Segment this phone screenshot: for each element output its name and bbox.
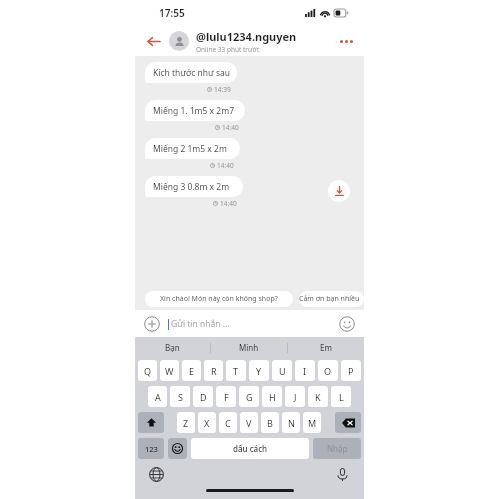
staticText: 14:39 xyxy=(214,85,231,94)
button[interactable]: N xyxy=(282,412,300,433)
button[interactable]: P xyxy=(341,360,361,381)
staticText: P xyxy=(348,365,354,377)
button[interactable]: A xyxy=(148,386,167,407)
button[interactable]: F xyxy=(216,386,236,407)
staticText: I xyxy=(303,365,307,377)
button[interactable]: W xyxy=(160,360,179,381)
staticText: Gửi tin nhắn ... xyxy=(171,318,230,330)
staticText: V xyxy=(246,417,252,429)
button[interactable]: Y xyxy=(249,360,269,381)
staticText: U xyxy=(279,365,286,377)
button[interactable]: More options xyxy=(336,31,356,51)
button[interactable]: R xyxy=(204,360,223,381)
staticText: G xyxy=(246,391,253,403)
staticText: Miếng 3 0.8m x 2m xyxy=(153,181,230,193)
staticText: Miếng 1. 1m5 x 2m7 xyxy=(153,105,234,117)
button[interactable]: Miếng 1. 1m5 x 2m7 xyxy=(145,100,245,121)
button[interactable]: T xyxy=(226,360,246,381)
button[interactable]: Bạn xyxy=(135,337,210,358)
button[interactable]: Z xyxy=(177,412,195,433)
button[interactable]: Back xyxy=(143,31,163,51)
button[interactable]: B xyxy=(261,412,279,433)
button[interactable]: V xyxy=(240,412,258,433)
button[interactable]: Gửi tin nhắn ... xyxy=(168,318,339,330)
button[interactable]: Nhập xyxy=(313,438,361,459)
button[interactable]: M xyxy=(303,412,321,433)
button[interactable]: C xyxy=(219,412,237,433)
button[interactable]: E xyxy=(182,360,201,381)
staticText: W xyxy=(165,365,174,377)
staticText: 14:40 xyxy=(217,161,234,170)
button[interactable]: Cảm ơn bạn nhiều n xyxy=(299,291,364,307)
button[interactable]: Kích thước như sau xyxy=(145,62,237,83)
button[interactable]: D xyxy=(193,386,213,407)
staticText: Xin chào! Món này còn không shop? xyxy=(160,294,278,304)
staticText: C xyxy=(225,417,231,429)
button[interactable]: L xyxy=(331,386,351,407)
staticText: D xyxy=(200,391,207,403)
staticText: E xyxy=(189,365,195,377)
staticText: H xyxy=(269,391,276,403)
button[interactable]: Miếng 3 0.8m x 2m xyxy=(145,176,243,197)
staticText: Z xyxy=(183,417,189,429)
staticText: Em xyxy=(320,342,332,353)
staticText: S xyxy=(178,391,183,403)
staticText: Minh xyxy=(239,342,259,353)
button[interactable]: Download xyxy=(328,180,350,202)
staticText: B xyxy=(267,417,273,429)
staticText: 123 xyxy=(145,444,158,454)
staticText: A xyxy=(155,391,161,403)
button[interactable]: Xin chào! Món này còn không shop? xyxy=(145,291,293,307)
button[interactable]: Numbers xyxy=(138,438,164,459)
staticText: Cảm ơn bạn nhiều n xyxy=(299,294,364,304)
button[interactable]: Minh xyxy=(211,337,287,358)
staticText: 17:55 xyxy=(159,6,185,20)
staticText: J xyxy=(294,391,297,403)
staticText: X xyxy=(204,417,210,429)
button[interactable]: O xyxy=(318,360,338,381)
staticText: dấu cách xyxy=(233,443,268,454)
staticText: M xyxy=(308,417,317,429)
button[interactable]: Miếng 2 1m5 x 2m xyxy=(145,138,240,159)
button[interactable]: S xyxy=(170,386,190,407)
button[interactable]: U xyxy=(272,360,292,381)
staticText: 14:40 xyxy=(220,199,237,208)
button[interactable]: K xyxy=(308,386,328,407)
staticText: F xyxy=(224,391,229,403)
button[interactable]: Emoji xyxy=(339,316,355,332)
button[interactable]: Backspace xyxy=(335,412,361,433)
button[interactable]: Emoji keyboard xyxy=(168,438,187,459)
button[interactable]: H xyxy=(262,386,282,407)
button[interactable]: J xyxy=(285,386,305,407)
button[interactable]: dấu cách xyxy=(191,438,309,459)
staticText: 14:40 xyxy=(222,123,239,132)
staticText: Nhập xyxy=(327,443,348,454)
button[interactable]: Em xyxy=(288,337,364,358)
button[interactable]: I xyxy=(295,360,315,381)
button[interactable]: Voice input xyxy=(335,467,350,482)
staticText: O xyxy=(324,365,332,377)
staticText: Y xyxy=(256,365,262,377)
staticText: Kích thước như sau xyxy=(153,67,231,79)
button[interactable]: Shift xyxy=(138,412,164,433)
staticText: Q xyxy=(144,365,152,377)
staticText: T xyxy=(233,365,239,377)
staticText: L xyxy=(339,391,344,403)
staticText: @lulu1234.nguyen xyxy=(196,29,297,44)
staticText: Bạn xyxy=(165,342,180,353)
staticText: N xyxy=(288,417,295,429)
button[interactable]: Add attachment xyxy=(144,316,160,332)
button[interactable]: Q xyxy=(138,360,157,381)
staticText: Online 33 phút trước xyxy=(196,45,260,54)
button[interactable]: Change language xyxy=(149,467,164,482)
staticText: R xyxy=(211,365,217,377)
button[interactable]: G xyxy=(239,386,259,407)
staticText: Miếng 2 1m5 x 2m xyxy=(153,143,227,155)
staticText: K xyxy=(315,391,321,403)
button[interactable]: X xyxy=(198,412,216,433)
